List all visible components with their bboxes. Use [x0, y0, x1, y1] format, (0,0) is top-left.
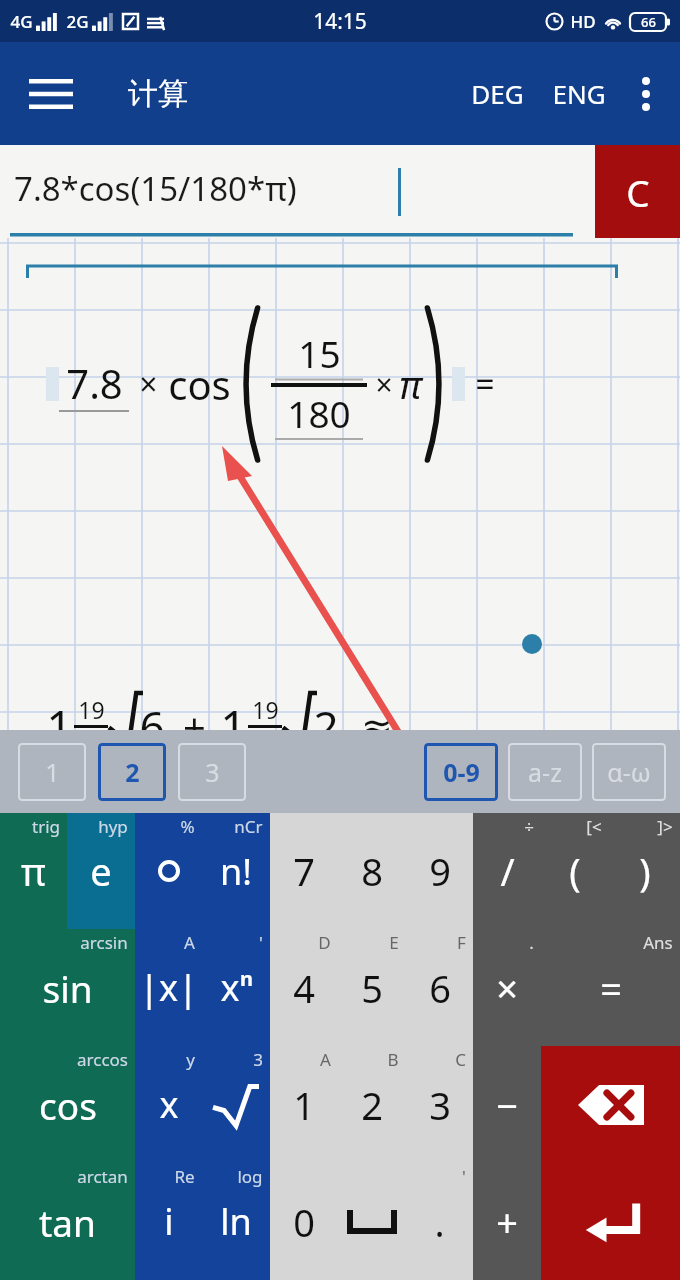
staticText: 4G — [10, 10, 33, 33]
staticText: Ans — [643, 931, 673, 954]
staticText: n — [240, 965, 253, 992]
staticText: ( — [569, 845, 581, 897]
staticText: 20 — [252, 728, 279, 759]
staticText: arccos — [77, 1048, 128, 1071]
button[interactable]: 0-9 — [424, 743, 498, 801]
button[interactable]: . — [473, 929, 541, 1046]
staticText: α-ω — [607, 755, 651, 789]
staticText: F — [457, 931, 466, 954]
staticText: 4 — [293, 962, 315, 1014]
button[interactable]: trig — [0, 813, 67, 929]
button[interactable]: A — [135, 929, 202, 1046]
staticText: E — [389, 931, 399, 954]
staticText: Re — [174, 1165, 195, 1188]
button[interactable]: y — [135, 1046, 202, 1163]
button[interactable]: C — [406, 1046, 473, 1163]
button[interactable]: ]> — [609, 813, 680, 929]
button[interactable]: Backspace — [541, 1046, 680, 1163]
button[interactable]: DEG — [457, 64, 538, 123]
staticText: 7 — [293, 845, 315, 897]
staticText: 14:15 — [313, 7, 367, 36]
staticText: 6 — [429, 962, 451, 1014]
button[interactable]: Ans — [541, 929, 680, 1046]
button[interactable]: 3 — [178, 743, 246, 801]
staticText: i — [164, 1197, 174, 1246]
button[interactable]: F — [406, 929, 473, 1046]
button[interactable]: D — [270, 929, 338, 1046]
staticText: hyp — [98, 815, 128, 838]
button[interactable]: 0 — [270, 1163, 338, 1280]
staticText: n! — [220, 847, 252, 896]
staticText: = — [475, 361, 495, 407]
staticText: B — [387, 1048, 399, 1071]
button[interactable]: ' — [202, 929, 270, 1046]
staticText: nCr — [234, 815, 263, 838]
button[interactable]: Re — [135, 1163, 202, 1280]
button[interactable]: More options — [620, 68, 672, 120]
staticText: x — [220, 963, 240, 1012]
staticText: C — [455, 1048, 466, 1071]
staticText: sin — [42, 963, 93, 1013]
staticText: 7.8*cos(15/180*π) — [14, 166, 297, 211]
button[interactable]: ÷ — [473, 813, 541, 929]
staticText: % — [180, 815, 195, 838]
staticText: 180 — [287, 388, 351, 438]
staticText: tan — [39, 1197, 96, 1247]
staticText: 2 — [361, 1079, 383, 1131]
button[interactable]: Space — [338, 1163, 406, 1280]
button[interactable]: a-z — [508, 743, 582, 801]
staticText: 3 — [429, 1079, 451, 1131]
button[interactable]: Square root — [202, 1046, 270, 1163]
staticText: 66 — [641, 13, 656, 31]
staticText: ' — [259, 931, 263, 954]
staticText: 7.534221445054732 — [46, 780, 452, 839]
staticText: 1 — [46, 695, 73, 758]
staticText: ÷ — [524, 815, 534, 838]
button[interactable]: E — [338, 929, 406, 1046]
button[interactable]: 2 — [98, 743, 166, 801]
button[interactable]: log — [202, 1163, 270, 1280]
button[interactable]: B — [338, 1046, 406, 1163]
button[interactable]: ' — [406, 1163, 473, 1280]
button[interactable]: 7 — [270, 813, 338, 929]
staticText: ≈ — [361, 704, 393, 748]
staticText: 2 — [125, 755, 140, 789]
button[interactable]: A — [270, 1046, 338, 1163]
button[interactable]: Enter — [541, 1163, 680, 1280]
staticText: 3 — [253, 1048, 263, 1071]
button[interactable]: 9 — [406, 813, 473, 929]
staticText: 20 — [78, 728, 105, 759]
staticText: 6 — [139, 696, 165, 756]
button[interactable]: arcsin — [0, 929, 135, 1046]
button[interactable]: 8 — [338, 813, 406, 929]
button[interactable]: α-ω — [592, 743, 666, 801]
staticText: ln — [220, 1197, 252, 1246]
button[interactable]: + — [473, 1163, 541, 1280]
button[interactable]: C — [595, 145, 680, 238]
button[interactable]: Add expression — [30, 858, 130, 936]
staticText: / — [500, 845, 515, 897]
staticText: = — [600, 962, 622, 1014]
staticText: π — [21, 845, 46, 897]
staticText: DEG — [471, 76, 524, 111]
button[interactable]: hyp — [67, 813, 135, 929]
button[interactable]: Degree — [135, 813, 202, 929]
staticText: cos — [168, 357, 231, 411]
button[interactable]: arctan — [0, 1163, 135, 1280]
staticText: C — [626, 167, 650, 217]
staticText: 0-9 — [443, 755, 480, 789]
staticText: π — [399, 358, 422, 410]
staticText: y — [186, 1048, 195, 1071]
button[interactable]: [< — [541, 813, 609, 929]
staticText: arctan — [77, 1165, 128, 1188]
staticText: × — [496, 962, 518, 1014]
staticText: 1 — [45, 755, 60, 789]
staticText: arcsin — [80, 931, 128, 954]
staticText: log — [237, 1165, 263, 1188]
button[interactable]: − — [473, 1046, 541, 1163]
button[interactable]: Menu — [22, 65, 80, 123]
button[interactable]: nCr — [202, 813, 270, 929]
button[interactable]: 1 — [18, 743, 86, 801]
button[interactable]: arccos — [0, 1046, 135, 1163]
button[interactable]: ENG — [538, 64, 620, 123]
